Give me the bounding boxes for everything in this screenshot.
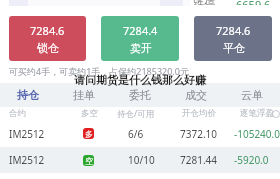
staticText: 云单	[241, 88, 263, 102]
staticText: 挂单	[73, 88, 95, 102]
staticText: 多空	[81, 108, 98, 119]
staticText: IM2512	[9, 127, 45, 141]
staticText: 合约	[9, 108, 26, 119]
button[interactable]: 持仓	[0, 83, 56, 107]
staticText: 7284.6	[30, 23, 65, 38]
staticText: 7284.4	[123, 23, 158, 38]
button[interactable]: 7284.4	[101, 16, 179, 61]
staticText: 平仓	[223, 41, 245, 55]
staticText: -105240.0	[234, 127, 280, 141]
staticText: 委托	[129, 88, 151, 102]
staticText: 6/6	[128, 127, 144, 141]
staticText: 锁仓	[37, 41, 59, 55]
staticText: 10/10	[128, 153, 155, 167]
staticText: 持仓	[17, 88, 39, 102]
button[interactable]: 挂单	[56, 83, 112, 107]
staticText: 7281.44	[180, 153, 217, 167]
staticText: 请问期货是什么钱那么好赚	[74, 73, 206, 87]
button[interactable]: 云单	[224, 83, 280, 107]
staticText: 多	[85, 129, 93, 139]
button[interactable]: 7284.6	[194, 16, 272, 61]
staticText: 成交	[185, 88, 207, 102]
staticText: 跌停	[193, 0, 215, 5]
button[interactable]: 7284.6	[9, 16, 86, 61]
staticText: 6659.6	[236, 0, 271, 5]
staticText: 空	[85, 156, 93, 166]
staticText: 逐笔浮盈	[240, 108, 274, 119]
button[interactable]: IM2512	[0, 147, 280, 173]
staticText: 卖开	[130, 41, 152, 55]
staticText: IM2512	[9, 153, 45, 167]
staticText: 7284.6	[216, 23, 251, 38]
staticText: -5920.0	[234, 153, 269, 167]
button[interactable]: 委托	[112, 83, 168, 107]
staticText: 可买约4手，可卖约1手，占保约2185320.0元	[9, 65, 189, 77]
staticText: 开仓均价	[182, 108, 216, 119]
button[interactable]: 成交	[168, 83, 224, 107]
button[interactable]: IM2512	[0, 120, 280, 147]
staticText: 7372.10	[180, 127, 217, 141]
staticText: 持仓/可用	[117, 108, 155, 120]
